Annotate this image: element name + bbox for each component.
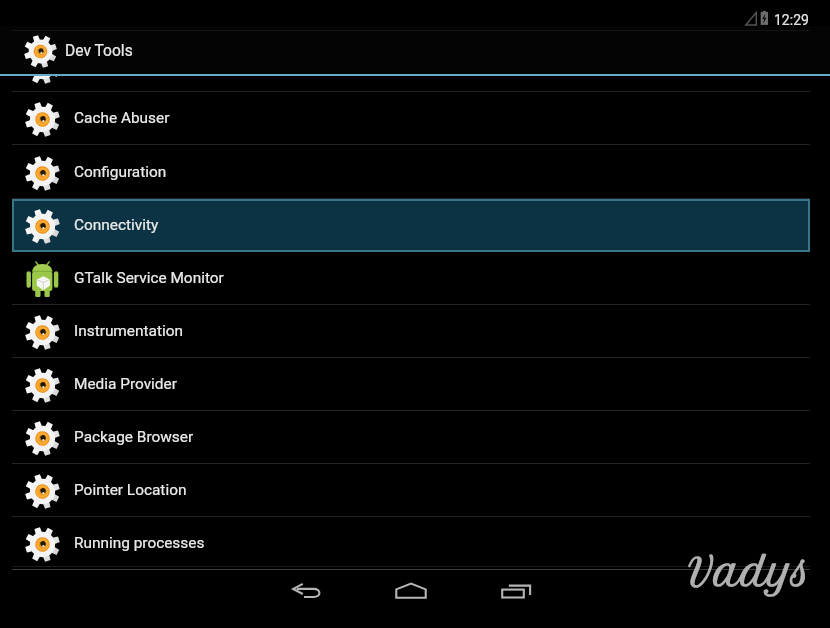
button[interactable]: Cache Abuser	[12, 92, 810, 145]
staticText: Cache Abuser	[74, 109, 170, 127]
staticText: Media Provider	[74, 375, 177, 393]
button[interactable]: Pointer Location	[12, 464, 810, 517]
button[interactable]: Configuration	[12, 146, 810, 199]
staticText: 12:29	[774, 12, 809, 28]
button[interactable]: Media Provider	[12, 358, 810, 411]
staticText: Package Browser	[74, 428, 194, 446]
staticText: Connectivity	[74, 216, 159, 234]
staticText: Pointer Location	[74, 481, 187, 499]
staticText: Instrumentation	[74, 322, 183, 340]
staticText: Vadys	[689, 549, 812, 595]
button[interactable]: Bad Behavior	[12, 39, 810, 92]
staticText: Running processes	[74, 534, 205, 552]
button[interactable]: Running processes	[12, 517, 810, 570]
button[interactable]: Recent apps	[486, 570, 546, 620]
button[interactable]: Connectivity	[12, 199, 810, 252]
staticText: Dev Tools	[65, 42, 133, 60]
staticText: Configuration	[74, 163, 167, 181]
button[interactable]: Back	[277, 570, 337, 620]
staticText: GTalk Service Monitor	[74, 269, 224, 287]
staticText: Vadys	[689, 549, 812, 595]
button[interactable]: Instrumentation	[12, 305, 810, 358]
button[interactable]: GTalk Service Monitor	[12, 252, 810, 305]
button[interactable]: Home	[381, 570, 441, 620]
button[interactable]: Package Browser	[12, 411, 810, 464]
